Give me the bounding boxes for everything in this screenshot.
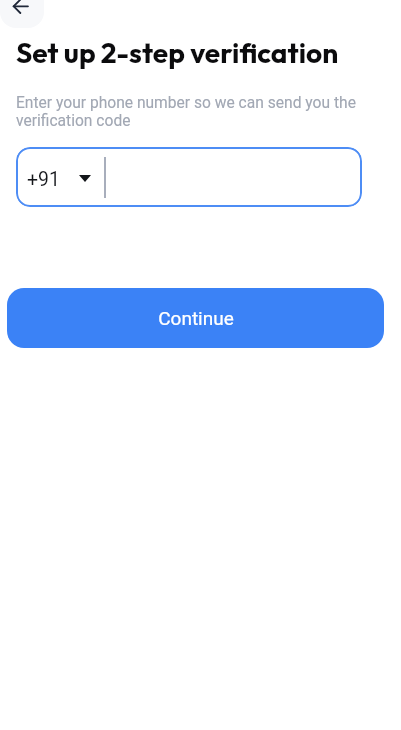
staticText: Continue <box>158 307 234 329</box>
staticText: Enter your phone number so we can send y… <box>16 94 362 130</box>
button[interactable]: Continue <box>7 288 384 348</box>
staticText: +91 <box>27 168 60 191</box>
button[interactable]: Back <box>0 0 44 28</box>
button[interactable]: +91 <box>27 147 91 207</box>
button[interactable]: Phone number <box>16 147 362 207</box>
staticText: Set up 2-step verification <box>16 35 339 70</box>
